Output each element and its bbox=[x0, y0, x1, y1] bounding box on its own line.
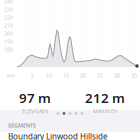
staticText: 15 bbox=[63, 72, 69, 79]
staticText: 230 bbox=[4, 6, 13, 13]
staticText: 190 bbox=[4, 38, 13, 45]
staticText: 200 bbox=[4, 30, 13, 37]
staticText: 212 m bbox=[85, 89, 125, 107]
staticText: 10 bbox=[46, 72, 52, 79]
staticText: 180 bbox=[4, 46, 13, 53]
staticText: SEGMENTS bbox=[8, 122, 36, 129]
staticText: 240 bbox=[4, 0, 13, 5]
staticText: MAX ELEV bbox=[93, 108, 117, 115]
staticText: 25 bbox=[97, 72, 103, 79]
staticText: 210 bbox=[4, 22, 13, 29]
staticText: 97 m bbox=[19, 89, 51, 107]
button[interactable]: Boundary Linwood Hillside bbox=[0, 133, 140, 140]
staticText: 30 bbox=[114, 72, 120, 79]
staticText: 220 bbox=[4, 14, 13, 21]
staticText: 5 bbox=[30, 72, 33, 79]
staticText: Boundary Linwood Hillside bbox=[8, 131, 108, 140]
staticText: km bbox=[7, 72, 15, 79]
staticText: 35 bbox=[131, 72, 137, 79]
staticText: ELEV GAIN bbox=[22, 108, 48, 115]
staticText: 20 bbox=[80, 72, 86, 79]
